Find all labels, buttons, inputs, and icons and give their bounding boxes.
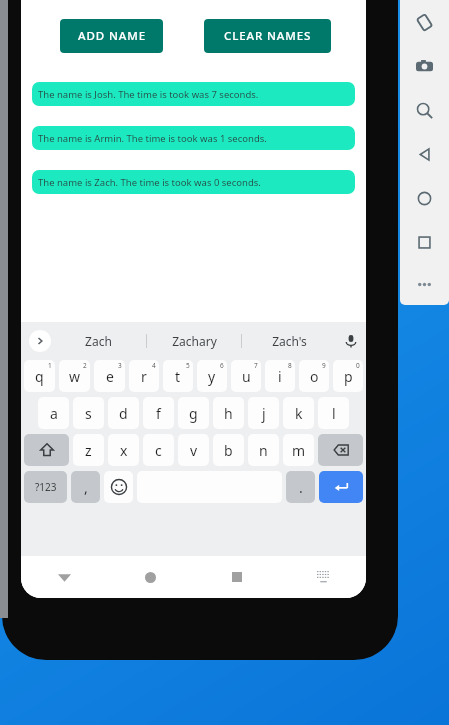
- button[interactable]: Home: [132, 559, 168, 595]
- button[interactable]: Recents: [219, 559, 255, 595]
- button[interactable]: Backspace: [318, 434, 363, 466]
- staticText: 6: [220, 361, 224, 370]
- button[interactable]: More options: [400, 264, 449, 305]
- staticText: Zach: [85, 333, 112, 349]
- button[interactable]: Overview: [400, 220, 449, 264]
- staticText: u: [242, 367, 251, 386]
- staticText: Zachary: [172, 333, 217, 349]
- staticText: p: [344, 367, 353, 386]
- button[interactable]: e: [94, 360, 125, 392]
- staticText: 7: [254, 361, 258, 370]
- button[interactable]: g: [178, 397, 209, 429]
- staticText: r: [141, 367, 147, 386]
- button[interactable]: q: [24, 360, 55, 392]
- staticText: q: [35, 367, 44, 386]
- button[interactable]: x: [108, 434, 139, 466]
- button[interactable]: o: [299, 360, 329, 392]
- staticText: k: [295, 404, 303, 423]
- staticText: Zach's: [272, 333, 307, 349]
- button[interactable]: Switch keyboard: [305, 559, 341, 595]
- button[interactable]: .: [286, 471, 315, 503]
- staticText: 3: [118, 361, 122, 370]
- button[interactable]: u: [231, 360, 261, 392]
- button[interactable]: d: [108, 397, 139, 429]
- staticText: l: [332, 404, 336, 423]
- button[interactable]: h: [213, 397, 244, 429]
- button[interactable]: y: [197, 360, 227, 392]
- button[interactable]: ,: [71, 471, 100, 503]
- staticText: ,: [84, 478, 88, 497]
- staticText: 4: [152, 361, 156, 370]
- button[interactable]: m: [283, 434, 314, 466]
- button[interactable]: r: [129, 360, 159, 392]
- staticText: 2: [83, 361, 87, 370]
- button[interactable]: Emoji: [104, 471, 133, 503]
- button[interactable]: Back: [400, 132, 449, 176]
- staticText: ADD NAME: [78, 28, 146, 44]
- button[interactable]: Expand suggestions: [29, 330, 51, 352]
- staticText: The name is Zach. The time is took was 0…: [38, 176, 261, 189]
- staticText: z: [85, 441, 92, 460]
- button[interactable]: Shift: [24, 434, 69, 466]
- staticText: e: [106, 367, 114, 386]
- button[interactable]: Enter: [319, 471, 363, 503]
- staticText: v: [190, 441, 198, 460]
- staticText: f: [156, 404, 161, 423]
- button[interactable]: The name is Armin. The time is took was …: [32, 126, 355, 150]
- button[interactable]: Zachary: [147, 322, 241, 360]
- button[interactable]: i: [265, 360, 295, 392]
- staticText: c: [155, 441, 162, 460]
- staticText: 1: [48, 361, 52, 370]
- staticText: x: [120, 441, 128, 460]
- button[interactable]: s: [73, 397, 104, 429]
- button[interactable]: Take screenshot: [400, 44, 449, 88]
- staticText: d: [119, 404, 128, 423]
- staticText: g: [189, 404, 198, 423]
- staticText: .: [299, 478, 303, 497]
- button[interactable]: k: [283, 397, 314, 429]
- button[interactable]: Zach: [51, 322, 146, 360]
- button[interactable]: p: [333, 360, 363, 392]
- button[interactable]: Zach's: [242, 322, 336, 360]
- button[interactable]: a: [38, 397, 69, 429]
- button[interactable]: Home: [400, 176, 449, 220]
- button[interactable]: c: [143, 434, 174, 466]
- button[interactable]: ?123: [24, 471, 67, 503]
- button[interactable]: CLEAR NAMES: [204, 19, 331, 53]
- staticText: The name is Armin. The time is took was …: [38, 132, 267, 145]
- button[interactable]: The name is Zach. The time is took was 0…: [32, 170, 355, 194]
- staticText: t: [175, 367, 181, 386]
- button[interactable]: v: [178, 434, 209, 466]
- staticText: n: [259, 441, 268, 460]
- staticText: a: [50, 404, 58, 423]
- button[interactable]: Zoom: [400, 88, 449, 132]
- button[interactable]: j: [248, 397, 279, 429]
- staticText: o: [310, 367, 319, 386]
- button[interactable]: f: [143, 397, 174, 429]
- staticText: 8: [288, 361, 292, 370]
- staticText: j: [262, 404, 266, 423]
- staticText: m: [292, 441, 306, 460]
- staticText: s: [85, 404, 92, 423]
- button[interactable]: t: [163, 360, 193, 392]
- button[interactable]: The name is Josh. The time is took was 7…: [32, 82, 355, 106]
- button[interactable]: w: [59, 360, 90, 392]
- staticText: i: [278, 367, 282, 386]
- button[interactable]: ADD NAME: [60, 19, 163, 53]
- button[interactable]: l: [318, 397, 349, 429]
- button[interactable]: b: [213, 434, 244, 466]
- staticText: 0: [356, 361, 360, 370]
- button[interactable]: n: [248, 434, 279, 466]
- button[interactable]: z: [73, 434, 104, 466]
- button[interactable]: Rotate: [400, 0, 449, 44]
- staticText: 9: [322, 361, 326, 370]
- staticText: h: [224, 404, 233, 423]
- staticText: b: [224, 441, 233, 460]
- staticText: The name is Josh. The time is took was 7…: [38, 88, 259, 101]
- staticText: 5: [186, 361, 190, 370]
- staticText: y: [208, 367, 216, 386]
- button[interactable]: Hide keyboard: [46, 559, 82, 595]
- staticText: ?123: [35, 480, 57, 494]
- button[interactable]: Voice input: [336, 322, 366, 360]
